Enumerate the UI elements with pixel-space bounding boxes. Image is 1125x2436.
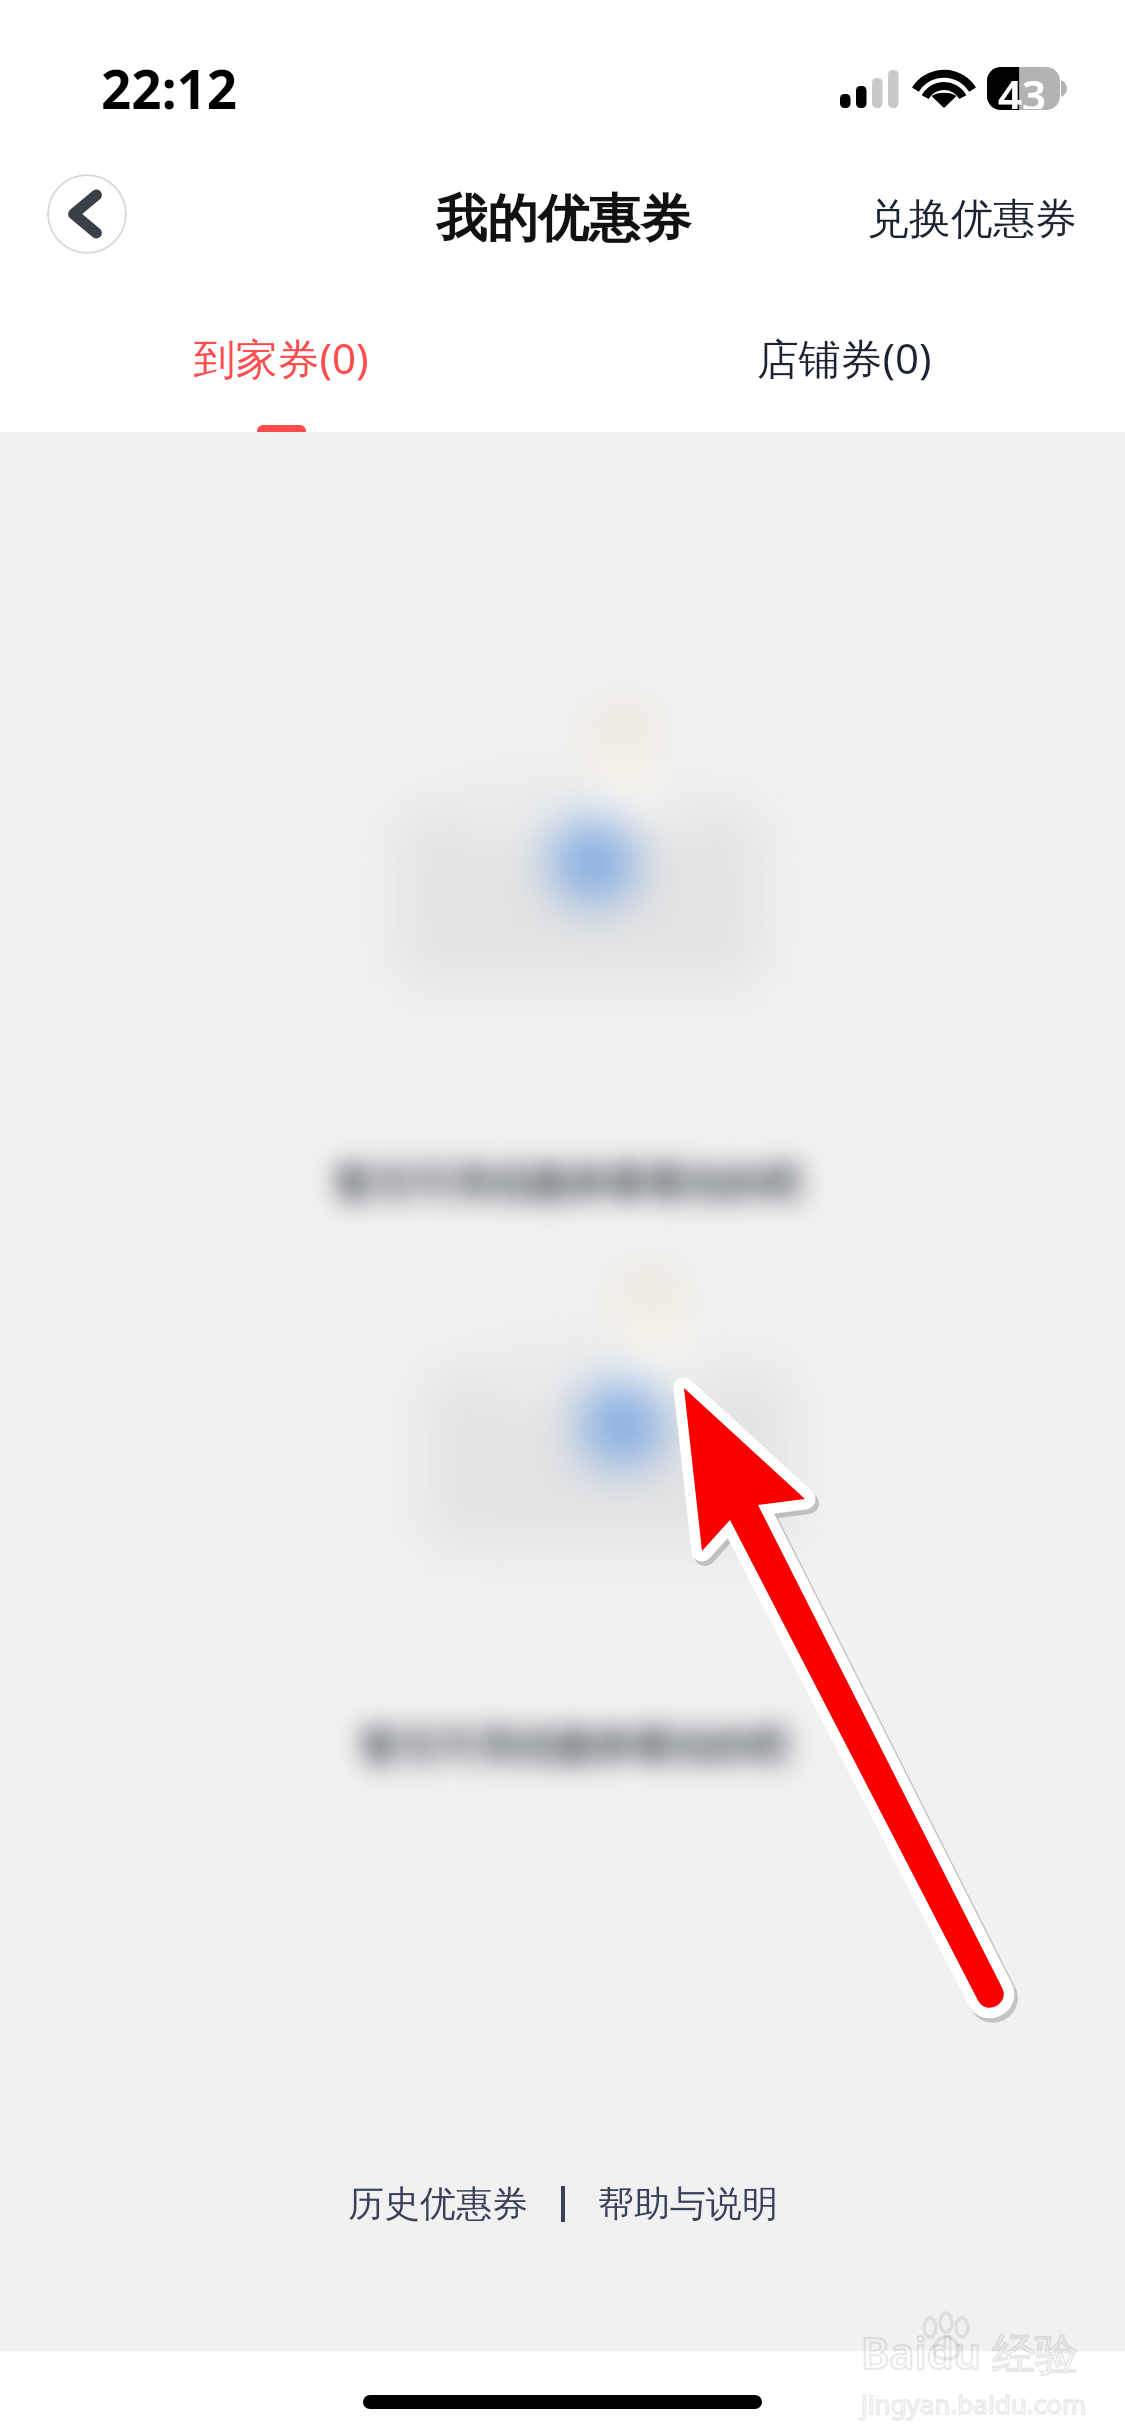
- button[interactable]: 帮助与说明: [588, 2167, 788, 2240]
- staticText: 到家券(0): [193, 329, 369, 386]
- staticText: 暂无可用优惠券看看别的吧: [334, 1159, 802, 1208]
- button[interactable]: 兑换优惠券: [843, 177, 1125, 262]
- staticText: jingyan.baidu.com: [861, 2386, 1087, 2421]
- staticText: 店铺券(0): [756, 329, 932, 386]
- staticText: 兑换优惠券: [867, 193, 1077, 246]
- staticText: 我的优惠券: [436, 187, 691, 251]
- button[interactable]: 店铺券(0): [562, 300, 1125, 432]
- staticText: 暂无可用优惠券看别的吧: [360, 1722, 789, 1771]
- button[interactable]: 历史优惠券: [338, 2167, 538, 2240]
- button[interactable]: 到家券(0): [0, 300, 562, 432]
- staticText: 43: [998, 66, 1047, 109]
- staticText: Baidu 经验: [861, 2323, 1079, 2382]
- staticText: 22:12: [101, 52, 238, 124]
- staticText: 历史优惠券: [348, 2181, 528, 2226]
- button[interactable]: Back: [47, 174, 127, 254]
- staticText: 帮助与说明: [598, 2181, 778, 2226]
